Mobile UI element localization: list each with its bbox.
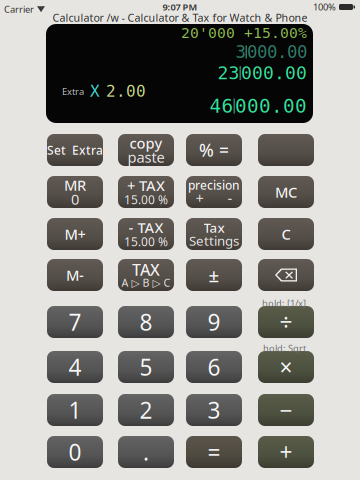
staticText: ± (208, 263, 219, 287)
button[interactable]: decimal point (118, 436, 174, 468)
staticText: A ▷ B ▷ C (121, 275, 170, 290)
button[interactable]: percent equals (186, 134, 242, 166)
staticText: 4 (68, 352, 81, 382)
button[interactable]: 0 (47, 436, 103, 468)
button[interactable]: multiply (258, 351, 314, 383)
staticText: 3 (207, 395, 220, 425)
button[interactable]: 4 (47, 351, 103, 383)
button[interactable]: divide (258, 306, 314, 338)
button[interactable]: 2 (118, 394, 174, 426)
staticText: 100% (313, 1, 336, 13)
staticText: M+ (64, 224, 85, 244)
button[interactable]: plus minus (186, 259, 242, 291)
button[interactable]: Memory subtract (47, 259, 103, 291)
button[interactable]: Clear (258, 218, 314, 250)
staticText: Calculator /w - Calculator & Tax for Wat… (52, 10, 307, 25)
staticText: ÷ (279, 307, 292, 337)
button[interactable]: Set Extra (47, 134, 103, 166)
button[interactable]: 6 (186, 351, 242, 383)
staticText: 6 (207, 352, 220, 382)
staticText: 0 (68, 437, 81, 467)
staticText: . (143, 437, 149, 467)
button[interactable]: 1 (47, 394, 103, 426)
staticText: - TAX (128, 218, 163, 237)
staticText: Extra (62, 85, 84, 97)
staticText: 000.00 (247, 42, 307, 62)
button[interactable]: copy paste (118, 134, 174, 166)
staticText: 9 (207, 307, 220, 337)
button[interactable]: Subtract tax (118, 218, 174, 250)
staticText: 2 (139, 395, 152, 425)
staticText: 7 (68, 307, 81, 337)
staticText: +15.00% (244, 24, 307, 42)
staticText: 0 (71, 189, 79, 209)
staticText: M- (66, 265, 84, 285)
staticText: hold: Sqrt (263, 342, 306, 354)
staticText: 15.00 % (124, 191, 168, 207)
staticText: copy (129, 133, 162, 153)
button[interactable]: Tax A B C (118, 259, 174, 291)
staticText: paste (127, 147, 164, 167)
button[interactable]: precision (186, 176, 242, 208)
button[interactable]: 9 (186, 306, 242, 338)
button[interactable]: 5 (118, 351, 174, 383)
button[interactable]: equals (186, 436, 242, 468)
staticText: X (90, 82, 100, 101)
staticText: MR (64, 175, 86, 195)
staticText: = (207, 437, 220, 467)
button[interactable]: Memory clear (258, 176, 314, 208)
staticText: + - (195, 188, 232, 208)
staticText: TAX (132, 259, 160, 280)
staticText: 5 (139, 352, 152, 382)
staticText: × (279, 352, 292, 382)
button[interactable]: 8 (118, 306, 174, 338)
staticText: Settings (189, 232, 239, 249)
staticText: C (281, 224, 290, 244)
button[interactable]: Memory recall (47, 176, 103, 208)
staticText: 46 (209, 95, 233, 117)
button[interactable]: blank (258, 134, 314, 166)
staticText: + (279, 437, 292, 467)
staticText: 000.00 (235, 95, 307, 117)
staticText: 8 (139, 307, 152, 337)
staticText: Set Extra (47, 142, 103, 158)
staticText: 15.00 % (124, 233, 168, 249)
staticText: hold: [1/x] (262, 297, 306, 309)
staticText: 2.00 (106, 82, 146, 101)
button[interactable]: Memory add (47, 218, 103, 250)
staticText: MC (275, 182, 297, 202)
staticText: Carrier (4, 3, 34, 15)
button[interactable]: minus (258, 394, 314, 426)
button[interactable]: Delete (258, 259, 314, 291)
staticText: 1 (68, 395, 81, 425)
staticText: 3 (235, 42, 245, 62)
staticText: precision (188, 177, 240, 193)
staticText: 20'000 (181, 24, 235, 42)
staticText: 23 (217, 62, 239, 83)
staticText: 9:07 PM (162, 1, 197, 13)
staticText: Tax (203, 219, 224, 236)
button[interactable]: 3 (186, 394, 242, 426)
button[interactable]: 7 (47, 306, 103, 338)
button[interactable]: Tax settings (186, 218, 242, 250)
staticText: 000.00 (241, 62, 307, 83)
staticText: % = (199, 138, 229, 161)
staticText: − (279, 395, 292, 425)
staticText: + TAX (127, 176, 165, 195)
button[interactable]: plus (258, 436, 314, 468)
button[interactable]: Add tax (118, 176, 174, 208)
